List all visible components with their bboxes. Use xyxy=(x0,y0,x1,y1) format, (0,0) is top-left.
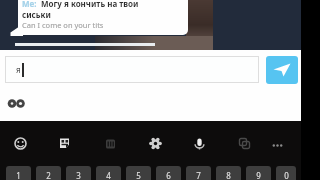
button[interactable]: 8 xyxy=(216,166,241,180)
staticText: 0 xyxy=(284,170,289,180)
staticText: 4 xyxy=(106,170,111,180)
staticText: 1 xyxy=(16,170,21,180)
staticText: 9 xyxy=(256,170,261,180)
button[interactable]: Me: xyxy=(18,0,188,35)
staticText: Can I come on your tits xyxy=(22,20,104,30)
button[interactable]: 5 xyxy=(126,166,151,180)
button[interactable]: Stickers xyxy=(58,137,71,150)
staticText: 5 xyxy=(136,170,141,180)
staticText: 7 xyxy=(196,170,201,180)
button[interactable]: 6 xyxy=(156,166,181,180)
staticText: сиськи xyxy=(22,9,51,20)
button[interactable]: Send xyxy=(266,56,298,84)
button[interactable]: 0 xyxy=(276,166,296,180)
button[interactable]: я xyxy=(5,56,259,83)
button[interactable]: 3 xyxy=(66,166,91,180)
button[interactable]: 7 xyxy=(186,166,211,180)
staticText: 2 xyxy=(46,170,51,180)
staticText: 6 xyxy=(166,170,171,180)
button[interactable]: Translate xyxy=(238,137,251,150)
staticText: я xyxy=(16,64,21,75)
button[interactable]: 2 xyxy=(36,166,61,180)
button[interactable]: 4 xyxy=(96,166,121,180)
button[interactable]: Emoji xyxy=(14,137,27,150)
button[interactable]: 1 xyxy=(6,166,31,180)
button[interactable]: More options xyxy=(271,139,284,152)
button[interactable]: Settings xyxy=(149,137,162,150)
staticText: Me: xyxy=(22,0,37,9)
button[interactable]: Voice input xyxy=(193,137,206,150)
button[interactable]: 9 xyxy=(246,166,271,180)
button[interactable]: Emoticons xyxy=(7,98,24,110)
staticText: Могу я кончить на твои xyxy=(41,0,139,9)
button[interactable]: Clipboard xyxy=(104,137,117,150)
staticText: 8 xyxy=(226,170,231,180)
staticText: 3 xyxy=(76,170,81,180)
